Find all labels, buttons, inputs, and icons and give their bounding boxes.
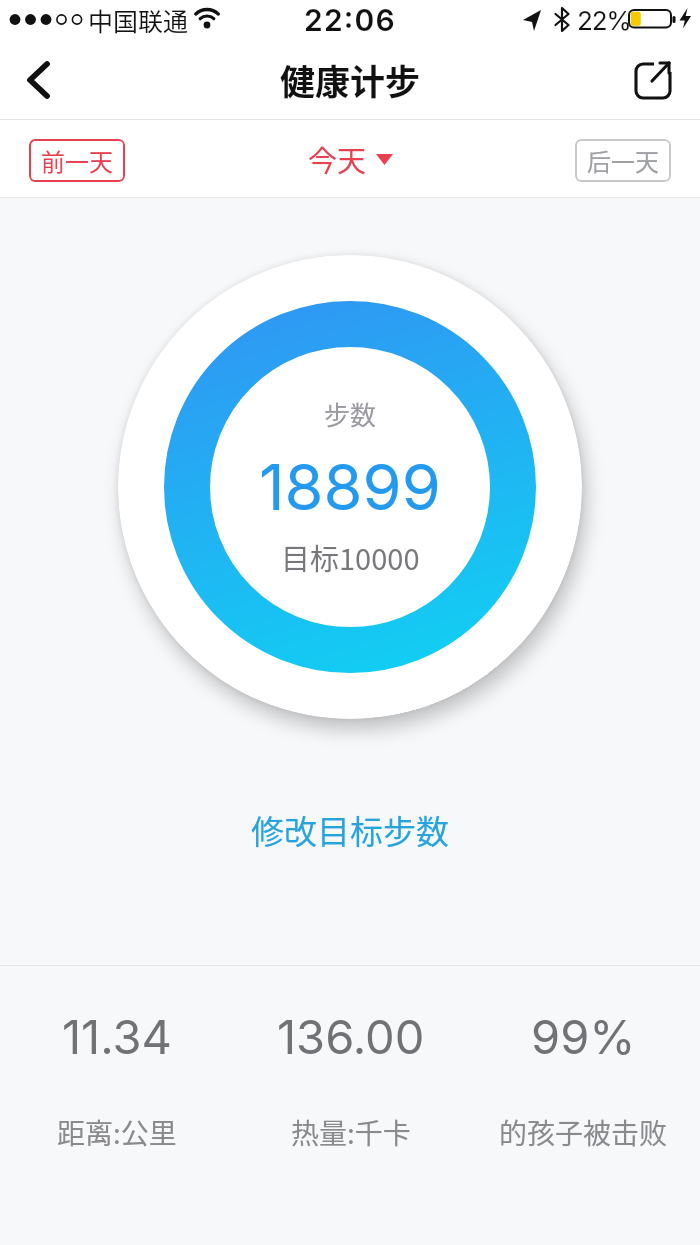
staticText: 后一天 [587,143,659,178]
staticText: 健康计步 [280,54,421,105]
staticText: 目标10000 [281,536,420,578]
staticText: 步数 [324,395,377,433]
staticText: 中国联通 [88,2,189,38]
button[interactable] [14,56,62,104]
staticText: 22% [577,5,631,36]
staticText: 99% [531,1008,636,1065]
button[interactable]: 今天 [308,138,393,180]
staticText: 的孩子被击败 [499,1112,668,1153]
staticText: 136.00 [277,1008,425,1065]
button[interactable]: 前一天 [29,139,125,182]
staticText: 18899 [259,449,441,525]
staticText: 修改目标步数 [251,806,449,854]
button[interactable] [634,60,674,100]
staticText: 距离:公里 [57,1112,177,1153]
button[interactable]: 修改目标步数 [251,800,449,860]
staticText: 热量:千卡 [291,1112,411,1153]
staticText: 前一天 [41,143,113,178]
staticText: 11.34 [62,1008,172,1065]
staticText: 今天 [308,138,367,180]
staticText: 22:06 [304,2,396,38]
button[interactable]: 后一天 [575,139,671,182]
